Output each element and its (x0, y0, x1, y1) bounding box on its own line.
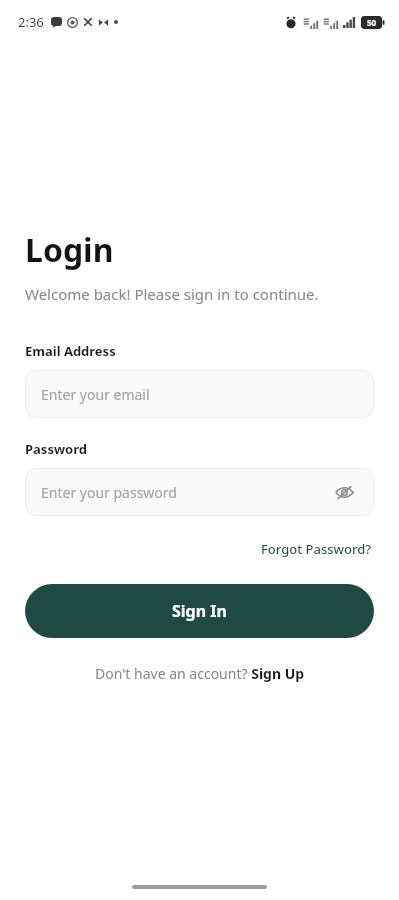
staticText: 2:36 (18, 13, 44, 31)
staticText: Password (25, 440, 87, 458)
button[interactable]: Enter your password (25, 468, 374, 516)
staticText: Don't have an account? Sign Up (95, 664, 305, 683)
staticText: Sign In (172, 600, 227, 622)
staticText: 50 (367, 17, 377, 28)
staticText: Enter your email (41, 385, 150, 404)
button[interactable]: Enter your email (25, 370, 374, 418)
staticText: Forgot Password? (261, 540, 372, 558)
staticText: Email Address (25, 342, 116, 360)
staticText: Login (25, 228, 114, 272)
staticText: Welcome back! Please sign in to continue… (25, 284, 319, 304)
button[interactable]: Don't have an account? Sign Up (91, 660, 309, 687)
button[interactable]: Show password (330, 478, 358, 506)
button[interactable]: Forgot Password? (259, 536, 374, 562)
button[interactable]: Sign In (25, 584, 374, 638)
staticText: Enter your password (41, 483, 177, 502)
